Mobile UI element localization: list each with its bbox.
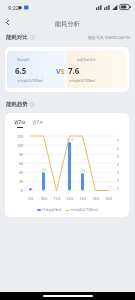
staticText: 7.6 <box>68 65 80 76</box>
staticText: 11.8 <box>64 138 76 142</box>
staticText: 11日 <box>51 196 63 201</box>
staticText: 0 <box>11 188 23 193</box>
staticText: 10日 <box>38 196 50 201</box>
staticText: 5 <box>117 154 119 159</box>
staticText: 能耗对比 <box>6 34 28 41</box>
staticText: 3 <box>117 170 119 175</box>
staticText: VS <box>56 67 65 77</box>
staticText: 平均油耗(L/100km) <box>17 79 44 83</box>
staticText: 平均油耗(L/100km) <box>70 208 98 212</box>
staticText: 最近七天 (04/09-04/15) <box>88 35 131 40</box>
staticText: 6.5 <box>15 65 27 76</box>
staticText: 行驶里程(km) <box>42 208 62 212</box>
staticText: 我的油耗 <box>17 58 30 62</box>
staticText: 2 <box>117 178 119 183</box>
button[interactable]: Back <box>1 16 14 29</box>
staticText: 6 <box>117 146 119 151</box>
staticText: 4.6 <box>77 169 89 173</box>
staticText: 40 <box>11 170 23 175</box>
button[interactable]: 近7日 <box>12 119 28 128</box>
staticText: 12日 <box>64 196 76 201</box>
staticText: 20 <box>11 179 23 184</box>
staticText: 能耗分析 <box>55 20 80 28</box>
staticText: 7 <box>117 138 119 143</box>
staticText: 4 <box>117 162 119 167</box>
staticText: 近7日 <box>14 119 26 125</box>
button[interactable] <box>67 51 127 88</box>
staticText: 80 <box>11 152 23 157</box>
staticText: 9:22 <box>8 4 19 11</box>
staticText: 同级车型车均 <box>77 58 96 62</box>
staticText: 13日 <box>77 196 89 201</box>
staticText: 15日 <box>103 196 115 201</box>
staticText: 14日 <box>90 196 102 201</box>
staticText: 近7月 <box>32 119 44 125</box>
staticText: 平均油耗(L/100km) <box>69 79 96 83</box>
staticText: 能耗趋势 <box>6 101 28 108</box>
staticText: 4.6 <box>38 168 50 172</box>
button[interactable] <box>7 51 67 88</box>
staticText: 1 <box>117 186 119 191</box>
staticText: 120 <box>11 134 23 139</box>
staticText: 60 <box>11 161 23 166</box>
staticText: 100 <box>11 143 23 148</box>
button[interactable]: 近7月 <box>30 119 46 127</box>
staticText: 9日 <box>25 196 37 201</box>
